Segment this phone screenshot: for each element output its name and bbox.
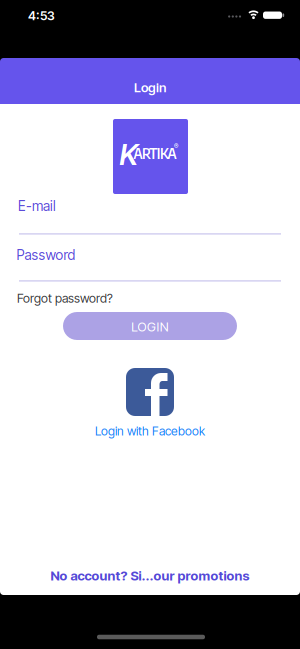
- staticText: Password: [16, 247, 75, 263]
- staticText: Login: [134, 80, 166, 95]
- staticText: Forgot password?: [17, 291, 113, 306]
- button[interactable]: E-mail: [19, 196, 281, 238]
- staticText: Login with Facebook: [95, 424, 205, 438]
- button[interactable]: [126, 368, 174, 416]
- button[interactable]: No account? Si...our promotions: [50, 568, 249, 584]
- button[interactable]: LOGIN: [63, 312, 237, 340]
- staticText: ®: [174, 142, 178, 151]
- button[interactable]: Login with Facebook: [95, 424, 205, 438]
- staticText: No account? Si...our promotions: [50, 568, 249, 584]
- button[interactable]: Password: [19, 244, 281, 286]
- staticText: E-mail: [18, 198, 56, 214]
- button[interactable]: Forgot password?: [17, 291, 113, 306]
- staticText: ARTIKA: [133, 144, 176, 162]
- staticText: K: [119, 137, 137, 172]
- staticText: LOGIN: [131, 319, 169, 334]
- staticText: 4:53: [28, 8, 55, 23]
